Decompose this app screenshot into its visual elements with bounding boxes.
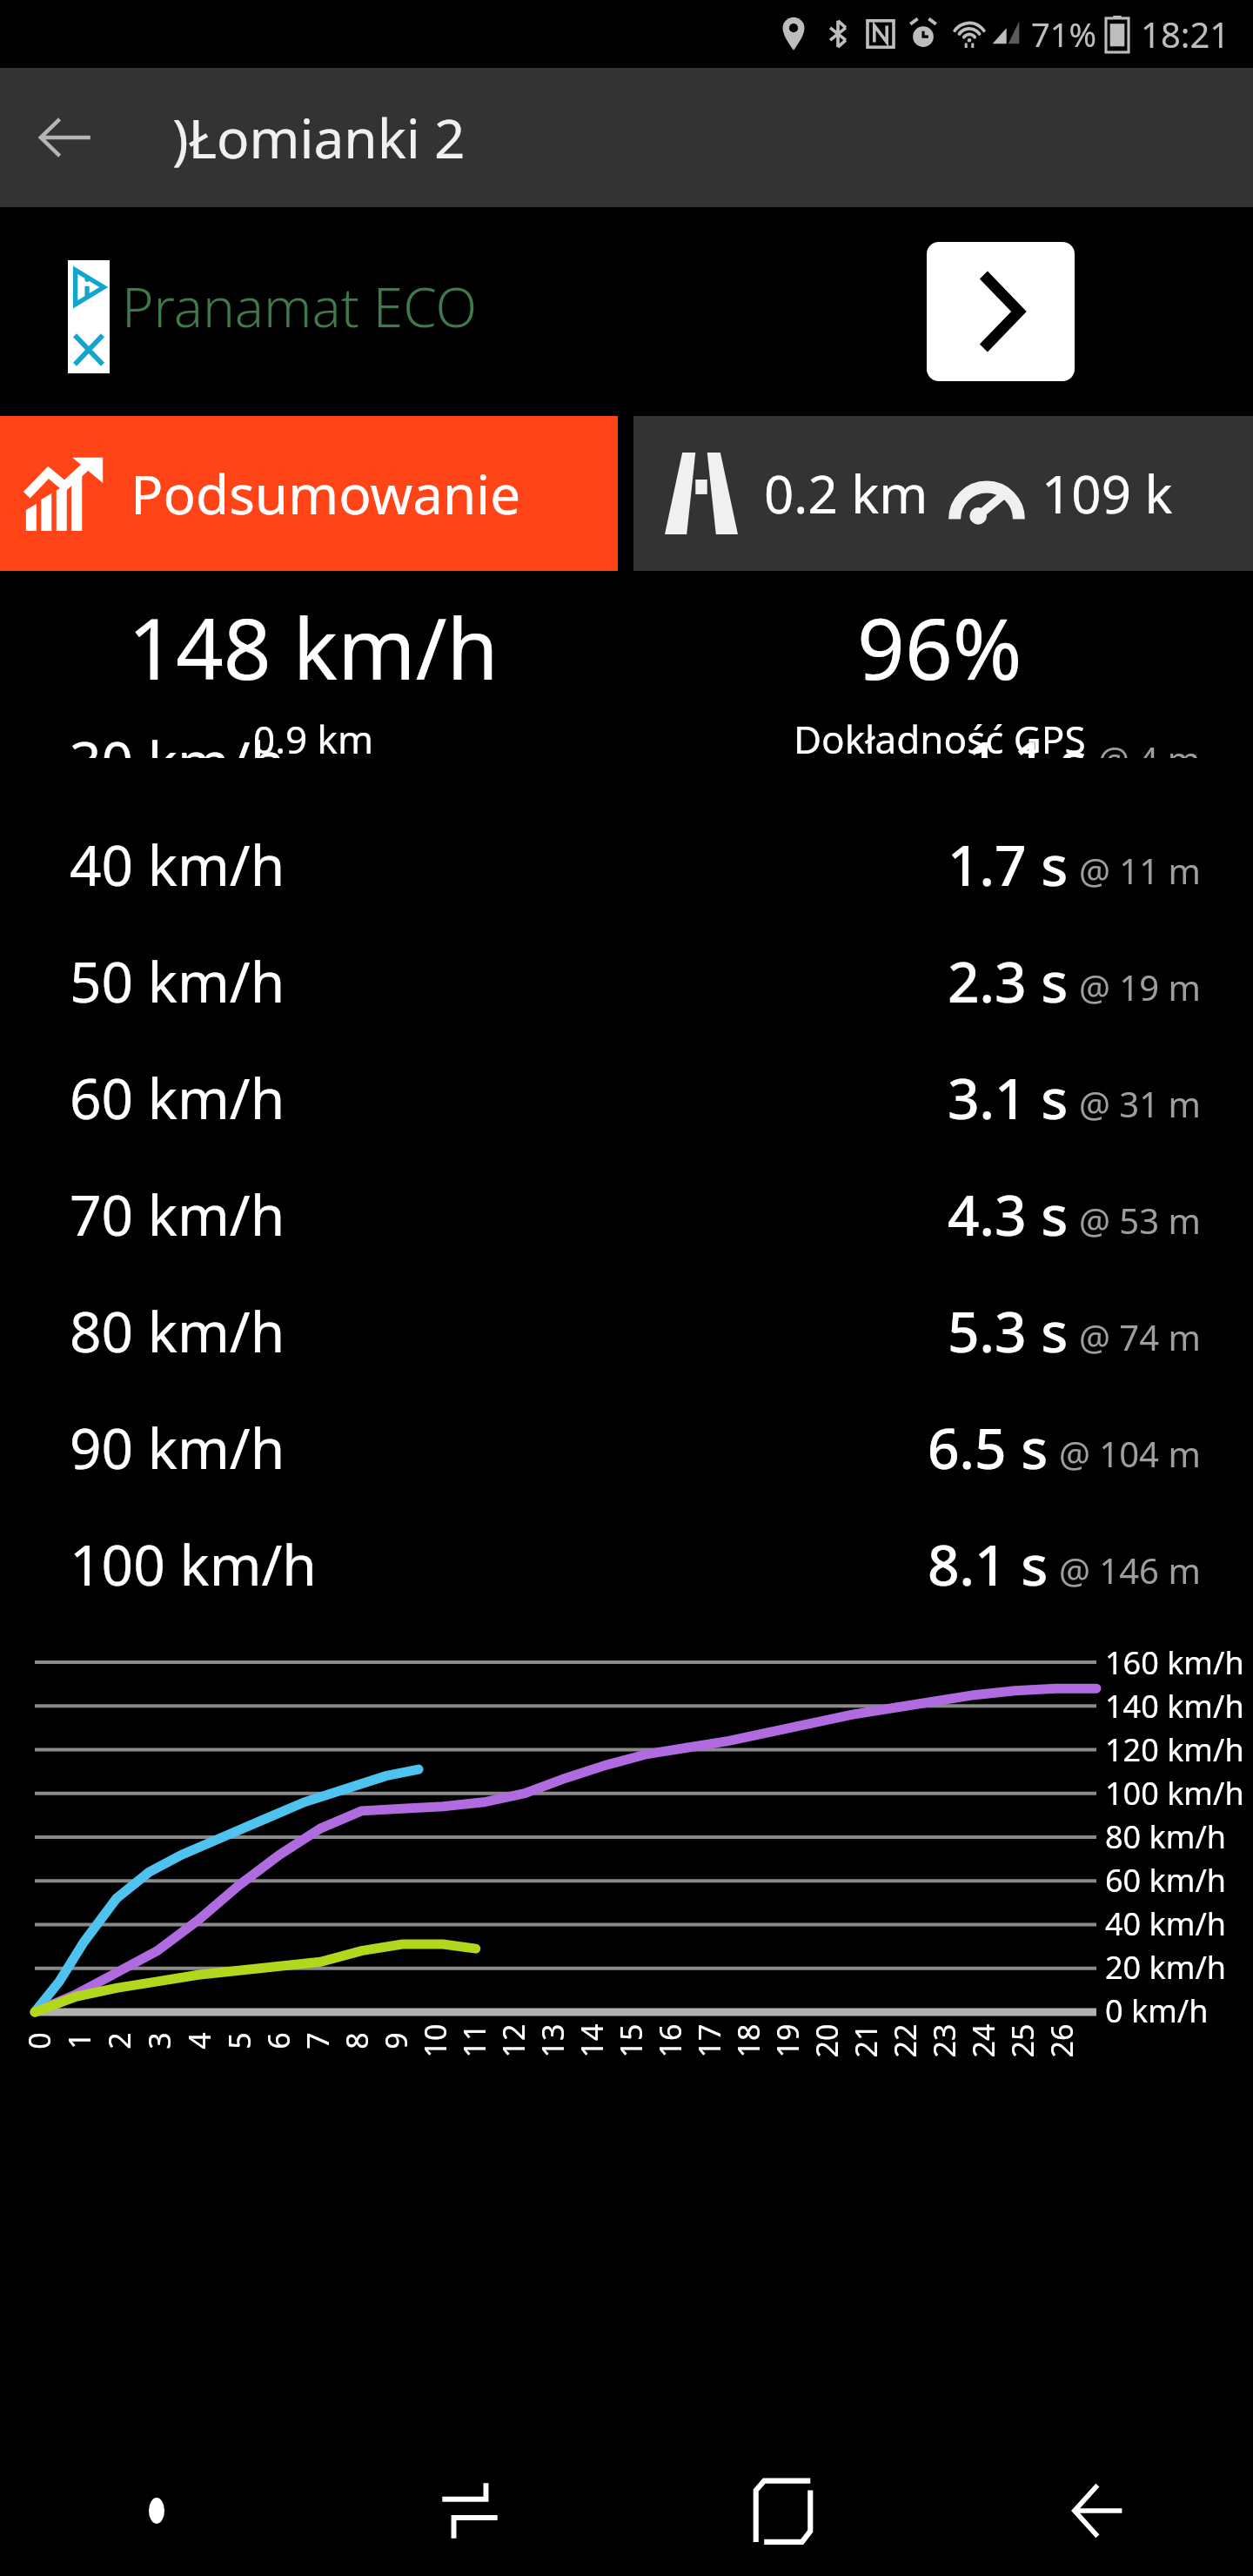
- staticText: 40 km/h: [70, 827, 285, 902]
- staticText: 60 km/h: [1105, 1859, 1227, 1902]
- staticText: 100 km/h: [70, 1526, 317, 1602]
- staticText: 10: [415, 2024, 455, 2058]
- staticText: 11: [454, 2024, 494, 2058]
- button[interactable]: 60 km/h: [0, 1039, 1253, 1156]
- staticText: 0.9 km: [253, 713, 374, 765]
- staticText: 80 km/h: [70, 1293, 285, 1369]
- staticText: 3.1 s: [948, 1060, 1069, 1136]
- staticText: 25: [1002, 2024, 1042, 2058]
- staticText: 18: [728, 2024, 768, 2058]
- button[interactable]: Podsumowanie: [0, 416, 618, 571]
- staticText: @ 11 m: [1079, 847, 1201, 894]
- button[interactable]: Back: [0, 72, 131, 203]
- staticText: 17: [689, 2024, 729, 2058]
- staticText: 109 k: [1042, 458, 1173, 529]
- staticText: 26: [1041, 2024, 1081, 2058]
- staticText: @ 19 m: [1079, 963, 1201, 1010]
- staticText: 12: [493, 2024, 533, 2058]
- button[interactable]: 50 km/h: [0, 922, 1253, 1039]
- staticText: 22: [884, 2024, 925, 2058]
- staticText: 6.5 s: [928, 1410, 1049, 1486]
- staticText: 0: [19, 2032, 59, 2049]
- staticText: 90 km/h: [70, 1410, 285, 1486]
- staticText: 15: [610, 2024, 650, 2058]
- button[interactable]: 0.2 km: [633, 416, 1253, 571]
- staticText: 60 km/h: [70, 1060, 285, 1136]
- staticText: Dokładność GPS: [794, 713, 1086, 765]
- button[interactable]: Ad choices: [0, 207, 1253, 416]
- button[interactable]: Recent apps: [313, 2445, 626, 2576]
- button[interactable]: 70 km/h: [0, 1156, 1253, 1272]
- staticText: 4: [179, 2032, 219, 2049]
- staticText: @ 146 m: [1059, 1546, 1201, 1593]
- staticText: 4.3 s: [948, 1177, 1069, 1252]
- staticText: 40 km/h: [1105, 1902, 1227, 1945]
- staticText: 8: [337, 2032, 377, 2049]
- staticText: 2: [99, 2032, 139, 2049]
- staticText: @ 53 m: [1079, 1197, 1201, 1244]
- staticText: 18:21: [1141, 10, 1230, 57]
- staticText: 24: [963, 2024, 1003, 2058]
- staticText: 14: [571, 2024, 611, 2058]
- button[interactable]: Open ad: [927, 242, 1075, 381]
- staticText: 5: [219, 2032, 259, 2049]
- staticText: 140 km/h: [1105, 1685, 1244, 1727]
- button[interactable]: Back: [940, 2445, 1253, 2576]
- staticText: @ 4 m: [1098, 735, 1201, 758]
- staticText: 16: [650, 2024, 690, 2058]
- button[interactable]: Home: [626, 2445, 940, 2576]
- staticText: @ 31 m: [1079, 1080, 1201, 1127]
- button[interactable]: 40 km/h: [0, 806, 1253, 922]
- staticText: 7: [298, 2032, 338, 2049]
- staticText: @ 104 m: [1059, 1430, 1201, 1477]
- staticText: 5.3 s: [948, 1293, 1069, 1369]
- button[interactable]: Ad choices: [68, 260, 110, 373]
- staticText: 1.7 s: [948, 827, 1069, 902]
- staticText: 1.1 s: [967, 723, 1088, 758]
- button[interactable]: 90 km/h: [0, 1389, 1253, 1506]
- button[interactable]: 80 km/h: [0, 1272, 1253, 1389]
- staticText: 100 km/h: [1105, 1772, 1244, 1815]
- staticText: 148 km/h: [128, 590, 499, 704]
- staticText: Pranamat ECO: [122, 270, 478, 343]
- staticText: Podsumowanie: [131, 457, 521, 530]
- staticText: )Łomianki 2: [172, 101, 466, 174]
- staticText: @ 74 m: [1079, 1313, 1201, 1360]
- staticText: 30 km/h: [70, 723, 285, 758]
- staticText: 8.1 s: [928, 1526, 1049, 1602]
- staticText: 23: [924, 2024, 964, 2058]
- button[interactable]: Menu: [0, 2445, 313, 2576]
- staticText: 6: [258, 2032, 298, 2049]
- staticText: 9: [376, 2032, 416, 2049]
- staticText: 70 km/h: [70, 1177, 285, 1252]
- staticText: 20: [806, 2024, 846, 2058]
- staticText: 0 km/h: [1105, 1989, 1209, 2032]
- button[interactable]: 100 km/h: [0, 1506, 1253, 1622]
- staticText: 20 km/h: [1105, 1946, 1227, 1989]
- staticText: 120 km/h: [1105, 1728, 1244, 1771]
- staticText: 96%: [857, 590, 1022, 704]
- staticText: 21: [845, 2024, 885, 2058]
- staticText: 160 km/h: [1105, 1641, 1244, 1684]
- staticText: 19: [767, 2024, 807, 2058]
- staticText: 50 km/h: [70, 943, 285, 1019]
- staticText: 13: [532, 2024, 572, 2058]
- staticText: 0.2 km: [764, 458, 928, 529]
- staticText: 3: [139, 2032, 179, 2049]
- staticText: 71%: [1031, 11, 1097, 57]
- staticText: 1: [59, 2032, 99, 2049]
- staticText: 80 km/h: [1105, 1815, 1227, 1858]
- staticText: 2.3 s: [948, 943, 1069, 1019]
